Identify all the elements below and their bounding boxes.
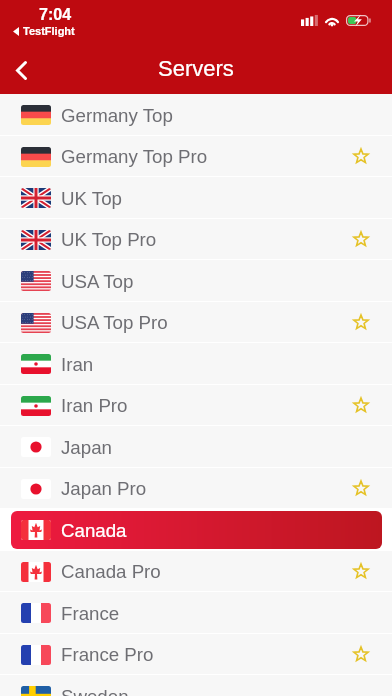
button[interactable]: Favorite: [343, 468, 379, 509]
button[interactable]: Japan Pro: [0, 468, 392, 509]
button[interactable]: Favorite: [343, 219, 379, 260]
button[interactable]: Favorite: [343, 385, 379, 426]
staticText: Germany Top: [61, 105, 173, 126]
staticText: Canada: [61, 520, 127, 541]
button[interactable]: Iran: [0, 343, 392, 385]
staticText: Iran: [61, 354, 94, 375]
staticText: USA Top Pro: [61, 312, 168, 333]
staticText: France Pro: [61, 644, 154, 665]
button[interactable]: Iran Pro: [0, 385, 392, 426]
button[interactable]: Sweden: [0, 675, 392, 696]
staticText: Iran Pro: [61, 395, 128, 416]
button[interactable]: Favorite: [343, 551, 379, 592]
button[interactable]: Germany Top Pro: [0, 136, 392, 177]
button[interactable]: Japan: [0, 426, 392, 468]
button[interactable]: UK Top: [0, 177, 392, 219]
staticText: Japan Pro: [61, 478, 147, 499]
staticText: Germany Top Pro: [61, 146, 208, 167]
button[interactable]: France: [0, 592, 392, 634]
button[interactable]: Canada Pro: [0, 551, 392, 592]
staticText: Servers: [158, 56, 234, 81]
staticText: Japan: [61, 437, 112, 458]
staticText: Canada Pro: [61, 561, 161, 582]
button[interactable]: USA Top Pro: [0, 302, 392, 343]
button[interactable]: UK Top Pro: [0, 219, 392, 260]
button[interactable]: Favorite: [343, 302, 379, 343]
button[interactable]: Favorite: [343, 136, 379, 177]
staticText: France: [61, 603, 120, 624]
button[interactable]: Canada: [0, 509, 392, 551]
staticText: UK Top: [61, 188, 122, 209]
button[interactable]: Back: [0, 46, 44, 94]
button[interactable]: France Pro: [0, 634, 392, 675]
staticText: TestFlight: [23, 25, 75, 37]
staticText: Sweden: [61, 686, 129, 696]
button[interactable]: Germany Top: [0, 94, 392, 136]
button[interactable]: Favorite: [343, 634, 379, 675]
button[interactable]: USA Top: [0, 260, 392, 302]
staticText: 7:04: [39, 6, 72, 24]
staticText: USA Top: [61, 271, 134, 292]
staticText: UK Top Pro: [61, 229, 157, 250]
